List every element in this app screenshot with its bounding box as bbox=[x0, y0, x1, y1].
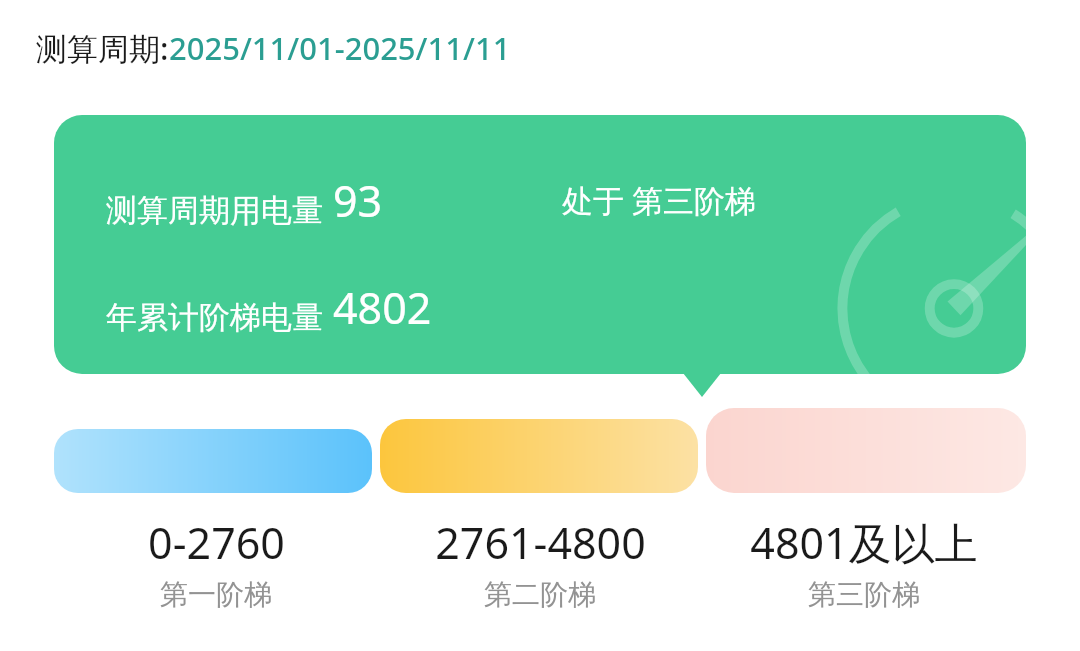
button[interactable]: 4801及以上 bbox=[702, 513, 1026, 612]
button[interactable]: 0-2760 bbox=[54, 513, 378, 612]
staticText: 93 bbox=[333, 171, 383, 230]
button[interactable]: 2761-4800 bbox=[378, 513, 702, 612]
staticText: 2761-4800 bbox=[435, 513, 646, 572]
button[interactable] bbox=[380, 419, 698, 493]
staticText: 4801及以上 bbox=[750, 513, 978, 572]
staticText: 4802 bbox=[333, 278, 432, 337]
staticText: 第一阶梯 bbox=[160, 577, 272, 612]
other: Usage gauge bbox=[854, 213, 1026, 374]
staticText: 测算周期: bbox=[36, 27, 169, 69]
button[interactable] bbox=[706, 408, 1026, 493]
staticText: 测算周期用电量 bbox=[106, 191, 323, 230]
button[interactable] bbox=[54, 429, 372, 493]
staticText: 第二阶梯 bbox=[484, 577, 596, 612]
staticText: 年累计阶梯电量 bbox=[106, 298, 323, 337]
button[interactable]: Usage gauge bbox=[54, 115, 1026, 374]
staticText: 第三阶梯 bbox=[808, 577, 920, 612]
staticText: 2025/11/01-2025/11/11 bbox=[169, 27, 511, 69]
staticText: 0-2760 bbox=[148, 513, 285, 572]
staticText: 处于 第三阶梯 bbox=[562, 179, 757, 221]
